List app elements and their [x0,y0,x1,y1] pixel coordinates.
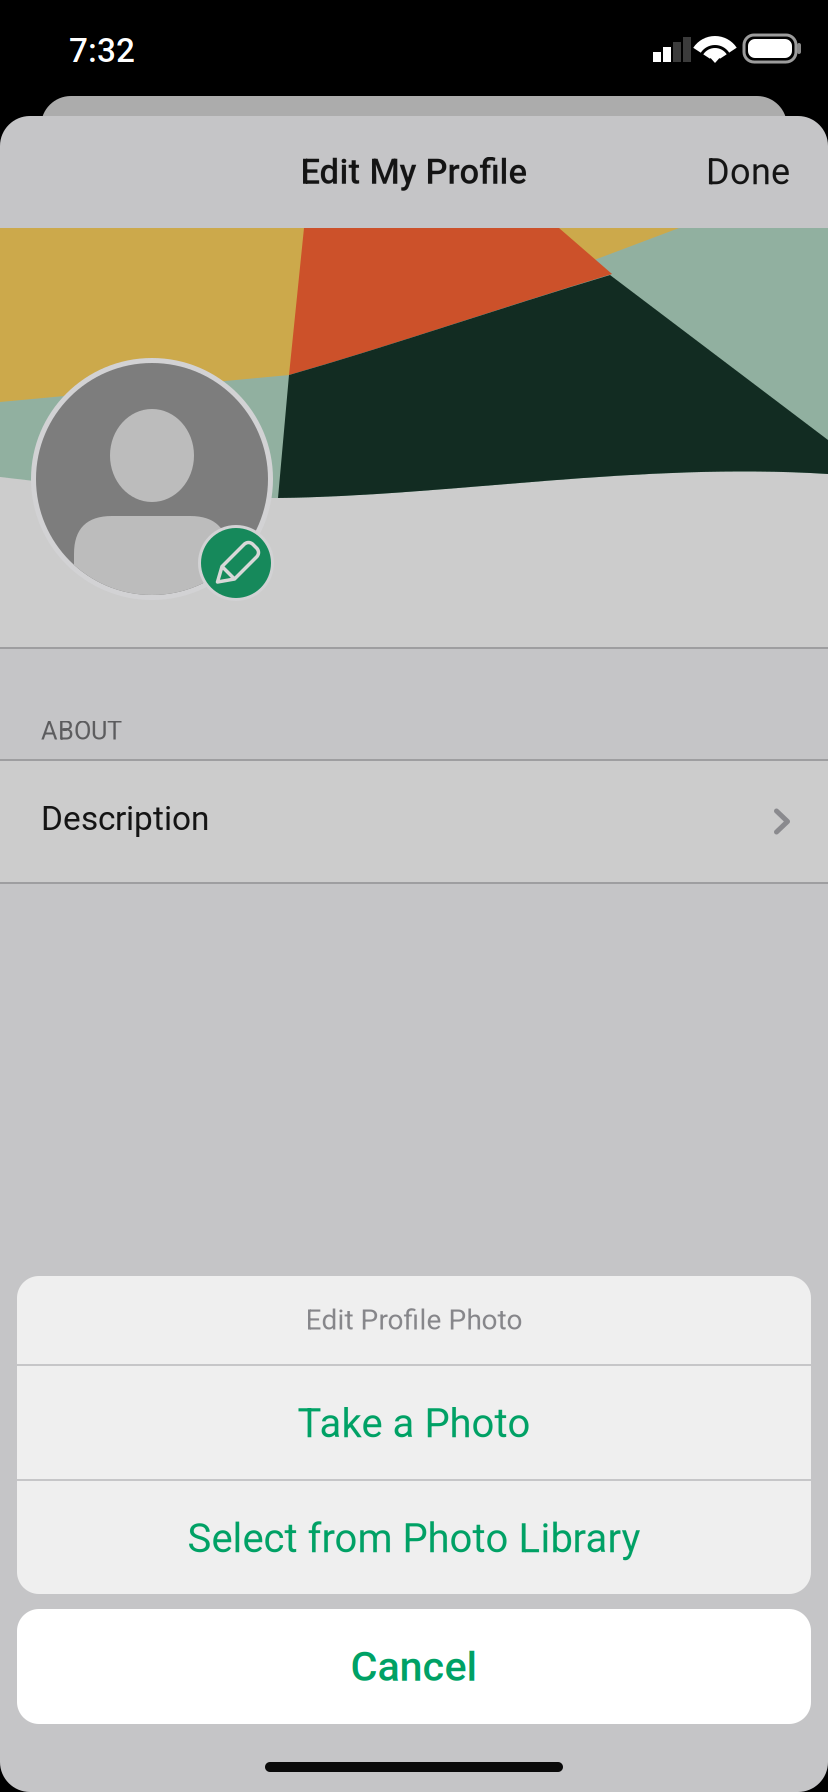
button[interactable]: Description [0,759,828,882]
staticText: Edit My Profile [300,152,527,192]
staticText: Cancel [350,1642,477,1691]
staticText: Take a Photo [297,1400,530,1447]
staticText: ABOUT [41,716,122,746]
button[interactable]: Done [673,116,823,228]
staticText: Edit Profile Photo [305,1304,522,1336]
button[interactable]: Cancel [17,1609,811,1724]
staticText: Select from Photo Library [187,1515,640,1562]
staticText: Done [706,151,790,193]
button[interactable]: Take a Photo [17,1366,811,1481]
staticText: 7:32 [69,31,135,70]
button[interactable]: Select from Photo Library [17,1481,811,1596]
staticText: Description [41,799,209,838]
button[interactable]: Edit profile photo [198,525,274,601]
